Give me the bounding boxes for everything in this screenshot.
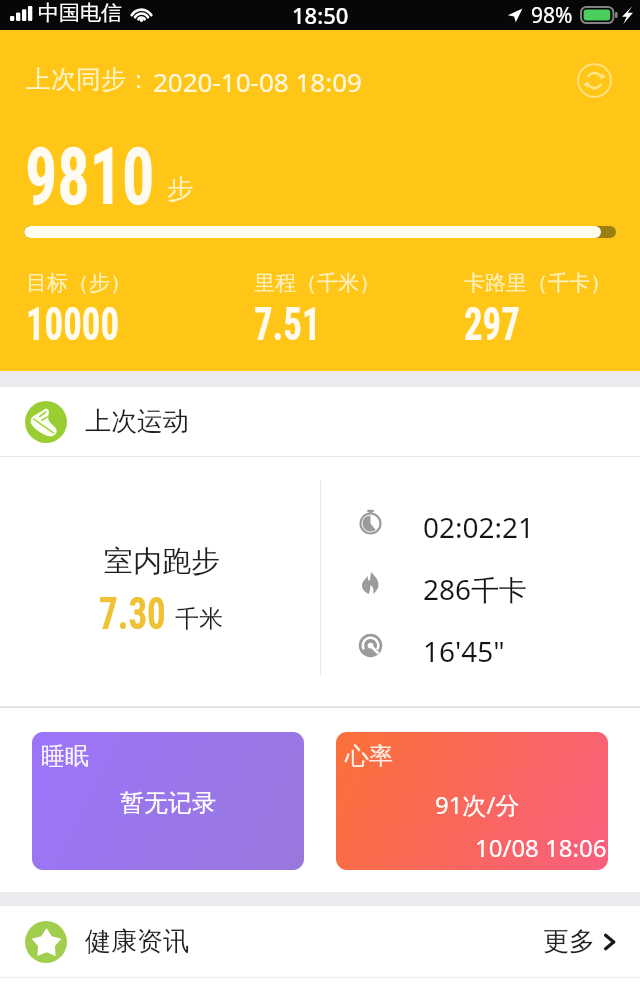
button[interactable]: 健康资讯 [0, 906, 640, 977]
button[interactable]: 心率 [336, 732, 608, 870]
button[interactable]: Sync [570, 56, 618, 104]
button[interactable]: 睡眠 [32, 732, 304, 870]
staticText: 7.51 [254, 297, 321, 351]
staticText: 9810 [25, 130, 155, 224]
staticText: 上次同步： [26, 64, 151, 95]
staticText: 千米 [175, 604, 223, 634]
staticText: 297 [464, 297, 520, 351]
button[interactable]: 上次运动 [0, 387, 640, 456]
staticText: 98% [531, 1, 573, 30]
staticText: 286千卡 [423, 570, 528, 608]
staticText: 91次/分 [435, 788, 520, 821]
staticText: 睡眠 [41, 741, 89, 771]
staticText: 目标（步） [26, 270, 131, 296]
staticText: 里程（千米） [254, 270, 380, 296]
staticText: 心率 [345, 741, 393, 771]
staticText: 18:50 [292, 0, 349, 30]
staticText: 10000 [26, 297, 120, 351]
staticText: 更多 [543, 925, 595, 958]
staticText: 中国电信 [38, 0, 122, 26]
staticText: 2020-10-08 18:09 [153, 64, 362, 99]
staticText: 步 [167, 173, 193, 206]
staticText: 02:02:21 [423, 508, 535, 546]
staticText: 7.30 [99, 588, 166, 640]
staticText: 10/08 18:06 [475, 831, 607, 864]
staticText: 上次运动 [85, 405, 189, 438]
staticText: 暂无记录 [120, 788, 216, 818]
staticText: 健康资讯 [85, 925, 189, 958]
staticText: 室内跑步 [104, 543, 220, 580]
staticText: 16'45" [423, 632, 505, 670]
staticText: 卡路里（千卡） [464, 270, 611, 296]
